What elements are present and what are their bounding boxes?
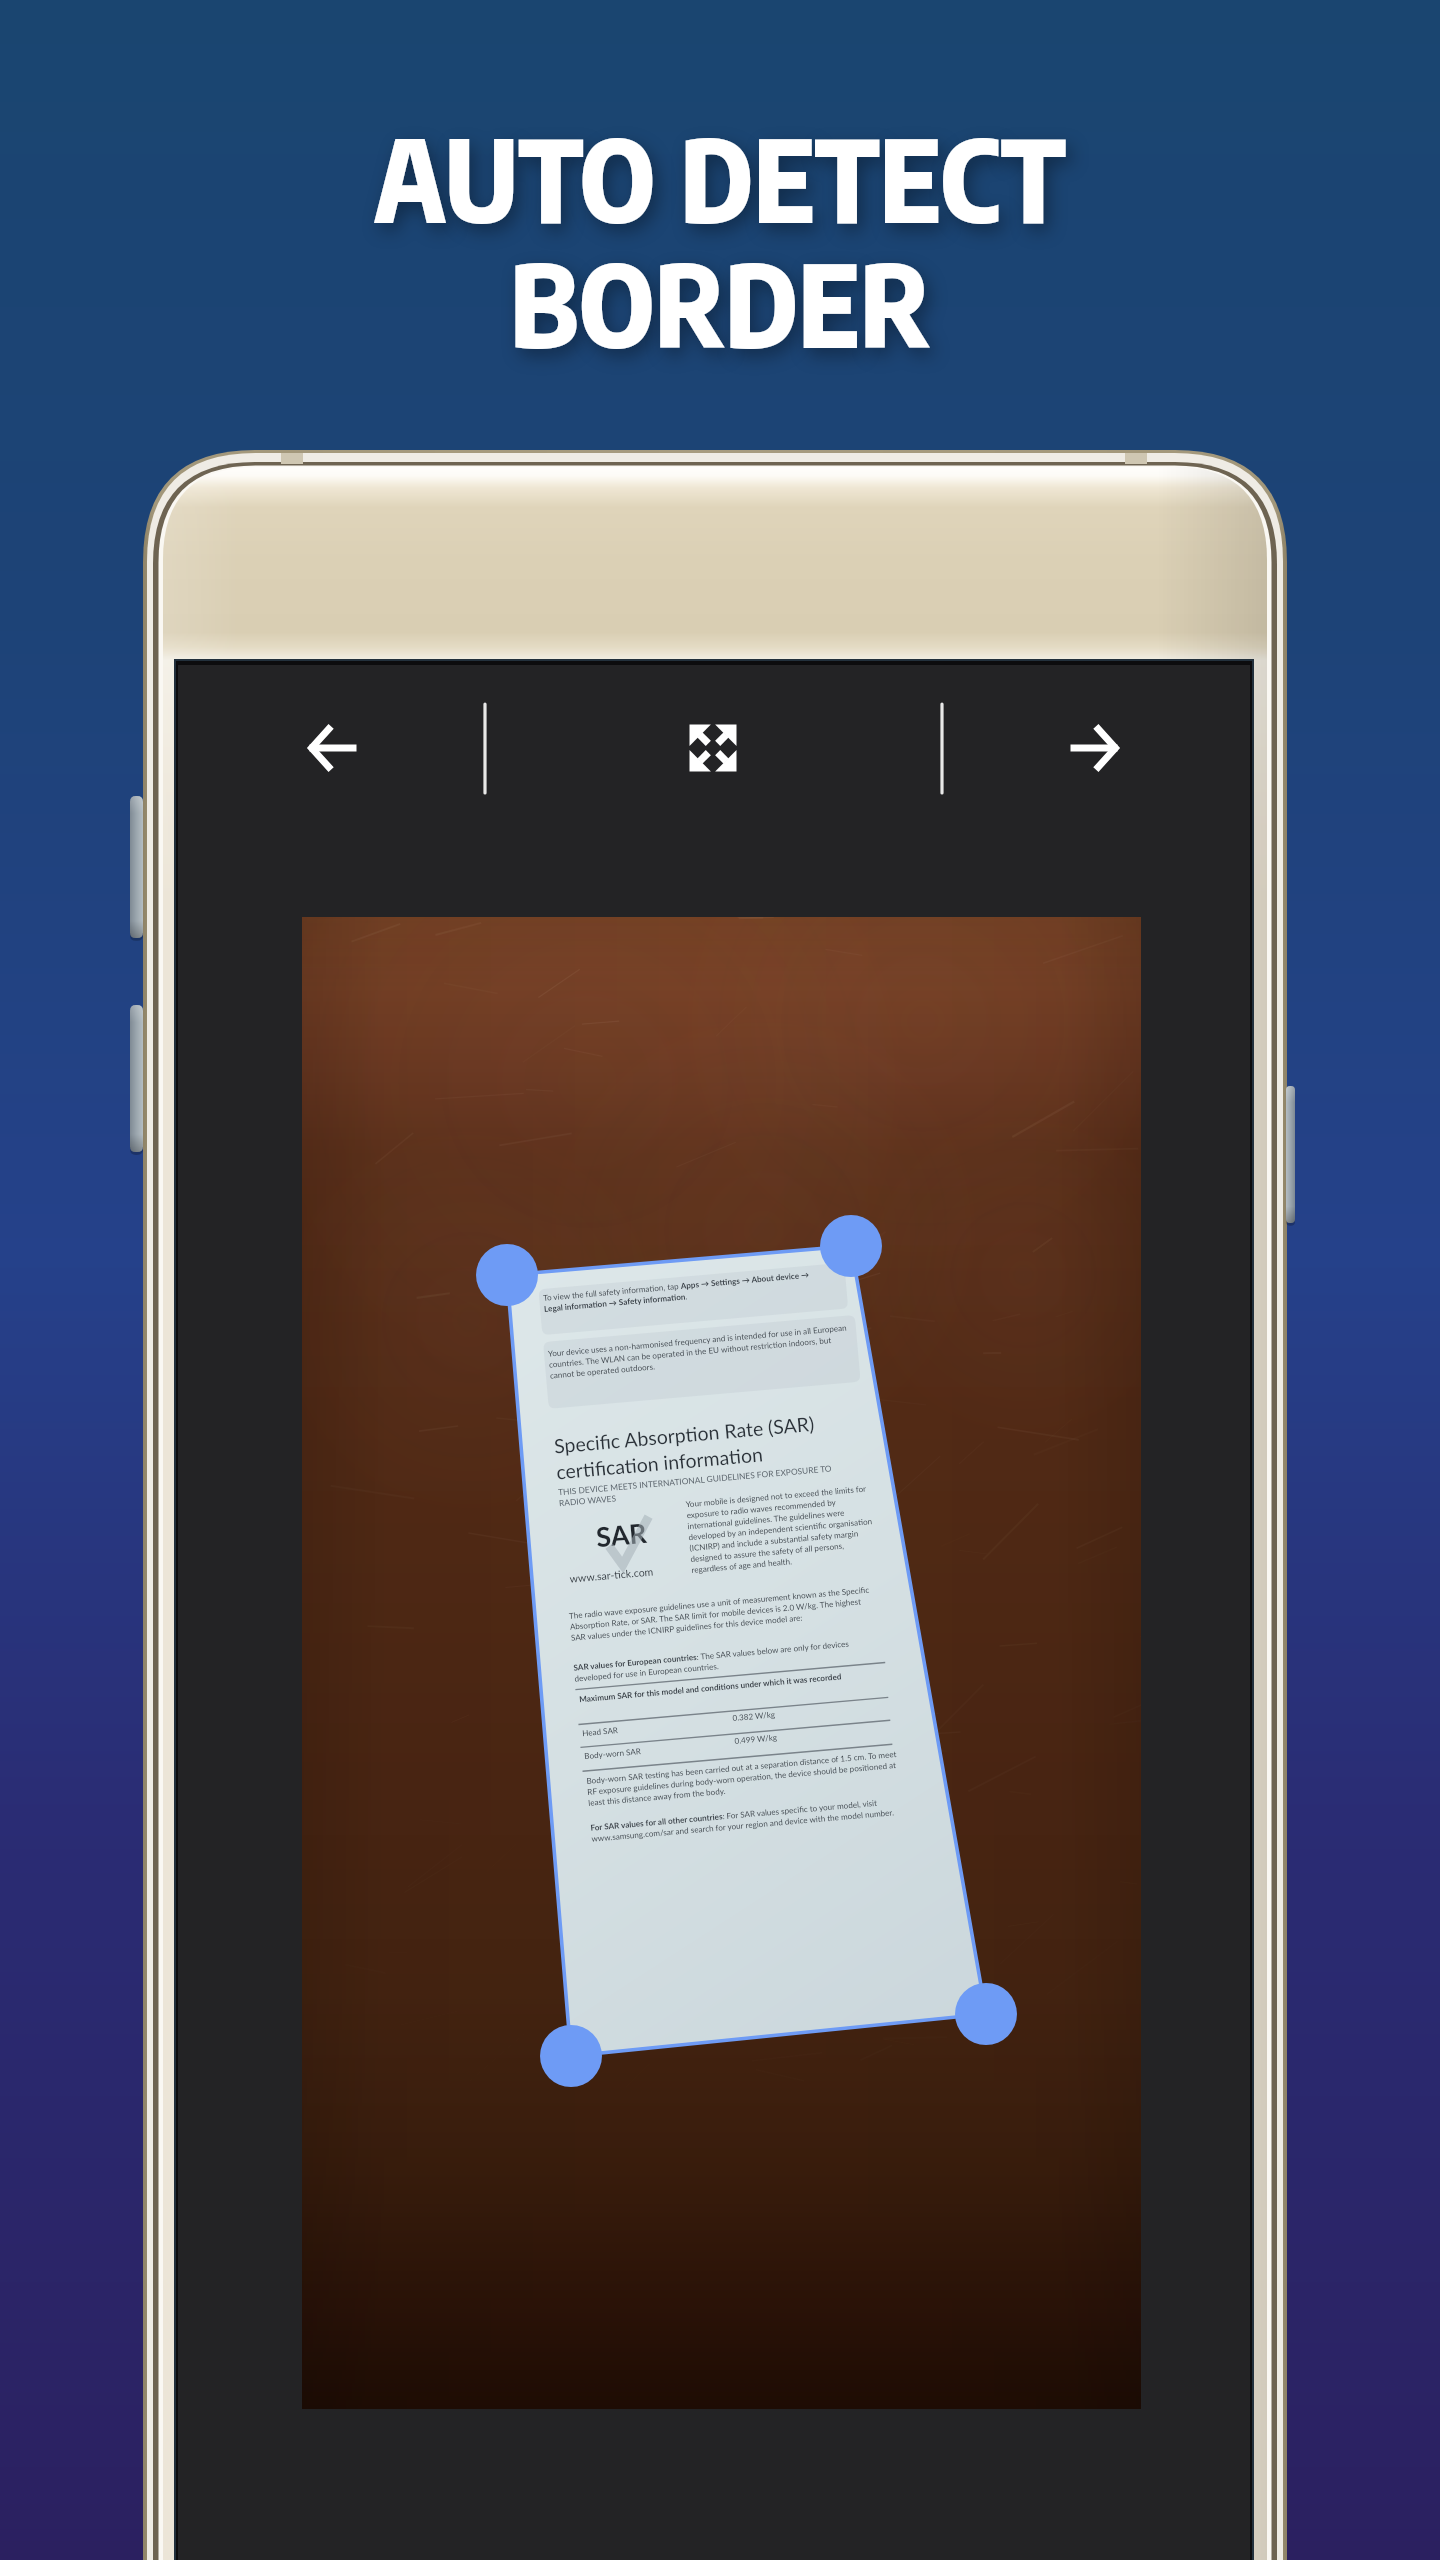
staticText: AUTO DETECT BORDER: [374, 120, 1066, 370]
button[interactable]: Previous page: [253, 668, 413, 828]
button[interactable]: Top left crop handle: [462, 1230, 552, 1320]
button[interactable]: Bottom right crop handle: [941, 1969, 1031, 2059]
button[interactable]: Fit to screen: [633, 668, 793, 828]
button[interactable]: Top right crop handle: [806, 1201, 896, 1291]
button[interactable]: Bottom left crop handle: [526, 2011, 616, 2101]
button[interactable]: Next page: [1014, 668, 1174, 828]
